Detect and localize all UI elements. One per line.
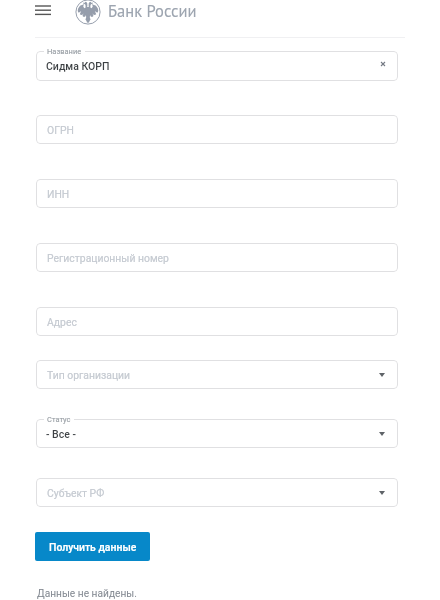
staticText: Банк России xyxy=(108,0,197,21)
staticText: Данные не найдены. xyxy=(37,588,137,600)
staticText: Получить данные xyxy=(49,541,137,553)
staticText: Статус xyxy=(47,415,71,424)
button[interactable]: Clear xyxy=(378,59,388,69)
button[interactable]: Тип организации xyxy=(36,360,398,389)
button[interactable]: Сидма КОРП xyxy=(36,51,398,81)
staticText: Регистрационный номер xyxy=(47,252,169,264)
staticText: ИНН xyxy=(47,188,70,200)
button[interactable]: Menu xyxy=(35,4,51,18)
staticText: - Все - xyxy=(46,428,76,440)
staticText: Адрес xyxy=(47,316,77,328)
button[interactable]: Адрес xyxy=(36,307,398,336)
button[interactable]: Получить данные xyxy=(35,532,150,561)
button[interactable]: - Все - xyxy=(36,419,398,448)
button[interactable]: Субъект РФ xyxy=(36,478,398,507)
button[interactable]: ОГРН xyxy=(36,115,398,144)
staticText: Тип организации xyxy=(47,369,131,381)
staticText: Субъект РФ xyxy=(47,487,105,499)
button[interactable]: Регистрационный номер xyxy=(36,243,398,272)
staticText: Сидма КОРП xyxy=(46,60,110,72)
staticText: ОГРН xyxy=(47,124,74,136)
button[interactable]: ИНН xyxy=(36,179,398,208)
staticText: Название xyxy=(47,47,82,56)
